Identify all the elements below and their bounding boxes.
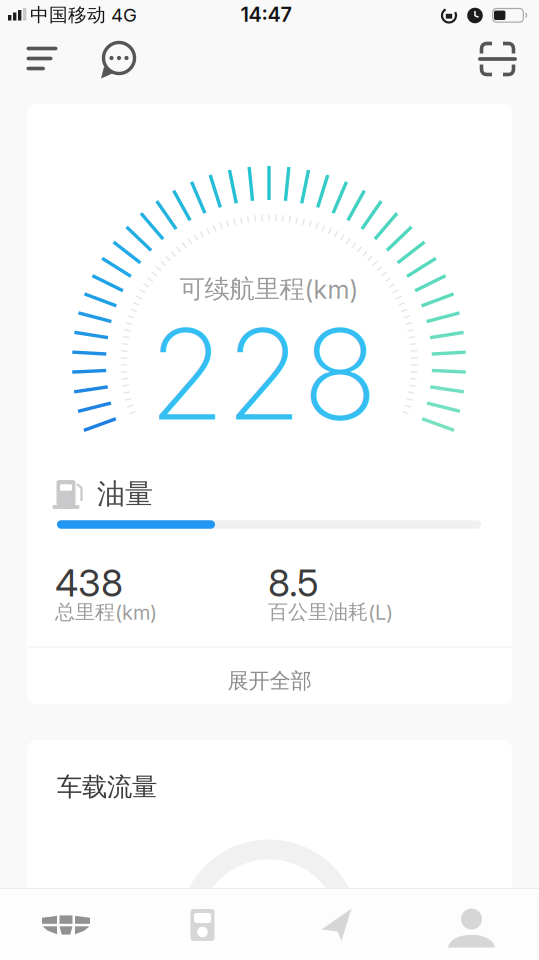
staticText: 228 [148,300,378,448]
staticText: 中国移动 [30,3,106,26]
button[interactable] [42,915,90,935]
button[interactable] [446,904,496,948]
button[interactable] [97,37,141,83]
button[interactable]: 展开全部 [27,657,512,705]
button[interactable] [315,903,359,947]
button[interactable] [475,37,519,81]
staticText: 8.5 [268,561,319,605]
button[interactable] [20,38,64,78]
staticText: 总里程(km) [55,600,157,624]
staticText: 展开全部 [227,668,311,694]
staticText: 438 [55,561,123,605]
staticText: 车载流量 [57,771,157,802]
staticText: 油量 [97,477,153,511]
staticText: 14:47 [240,3,291,26]
button[interactable] [182,903,222,947]
staticText: 可续航里程(km) [179,273,358,304]
staticText: 4G [111,4,137,26]
staticText: 百公里油耗(L) [268,600,393,624]
